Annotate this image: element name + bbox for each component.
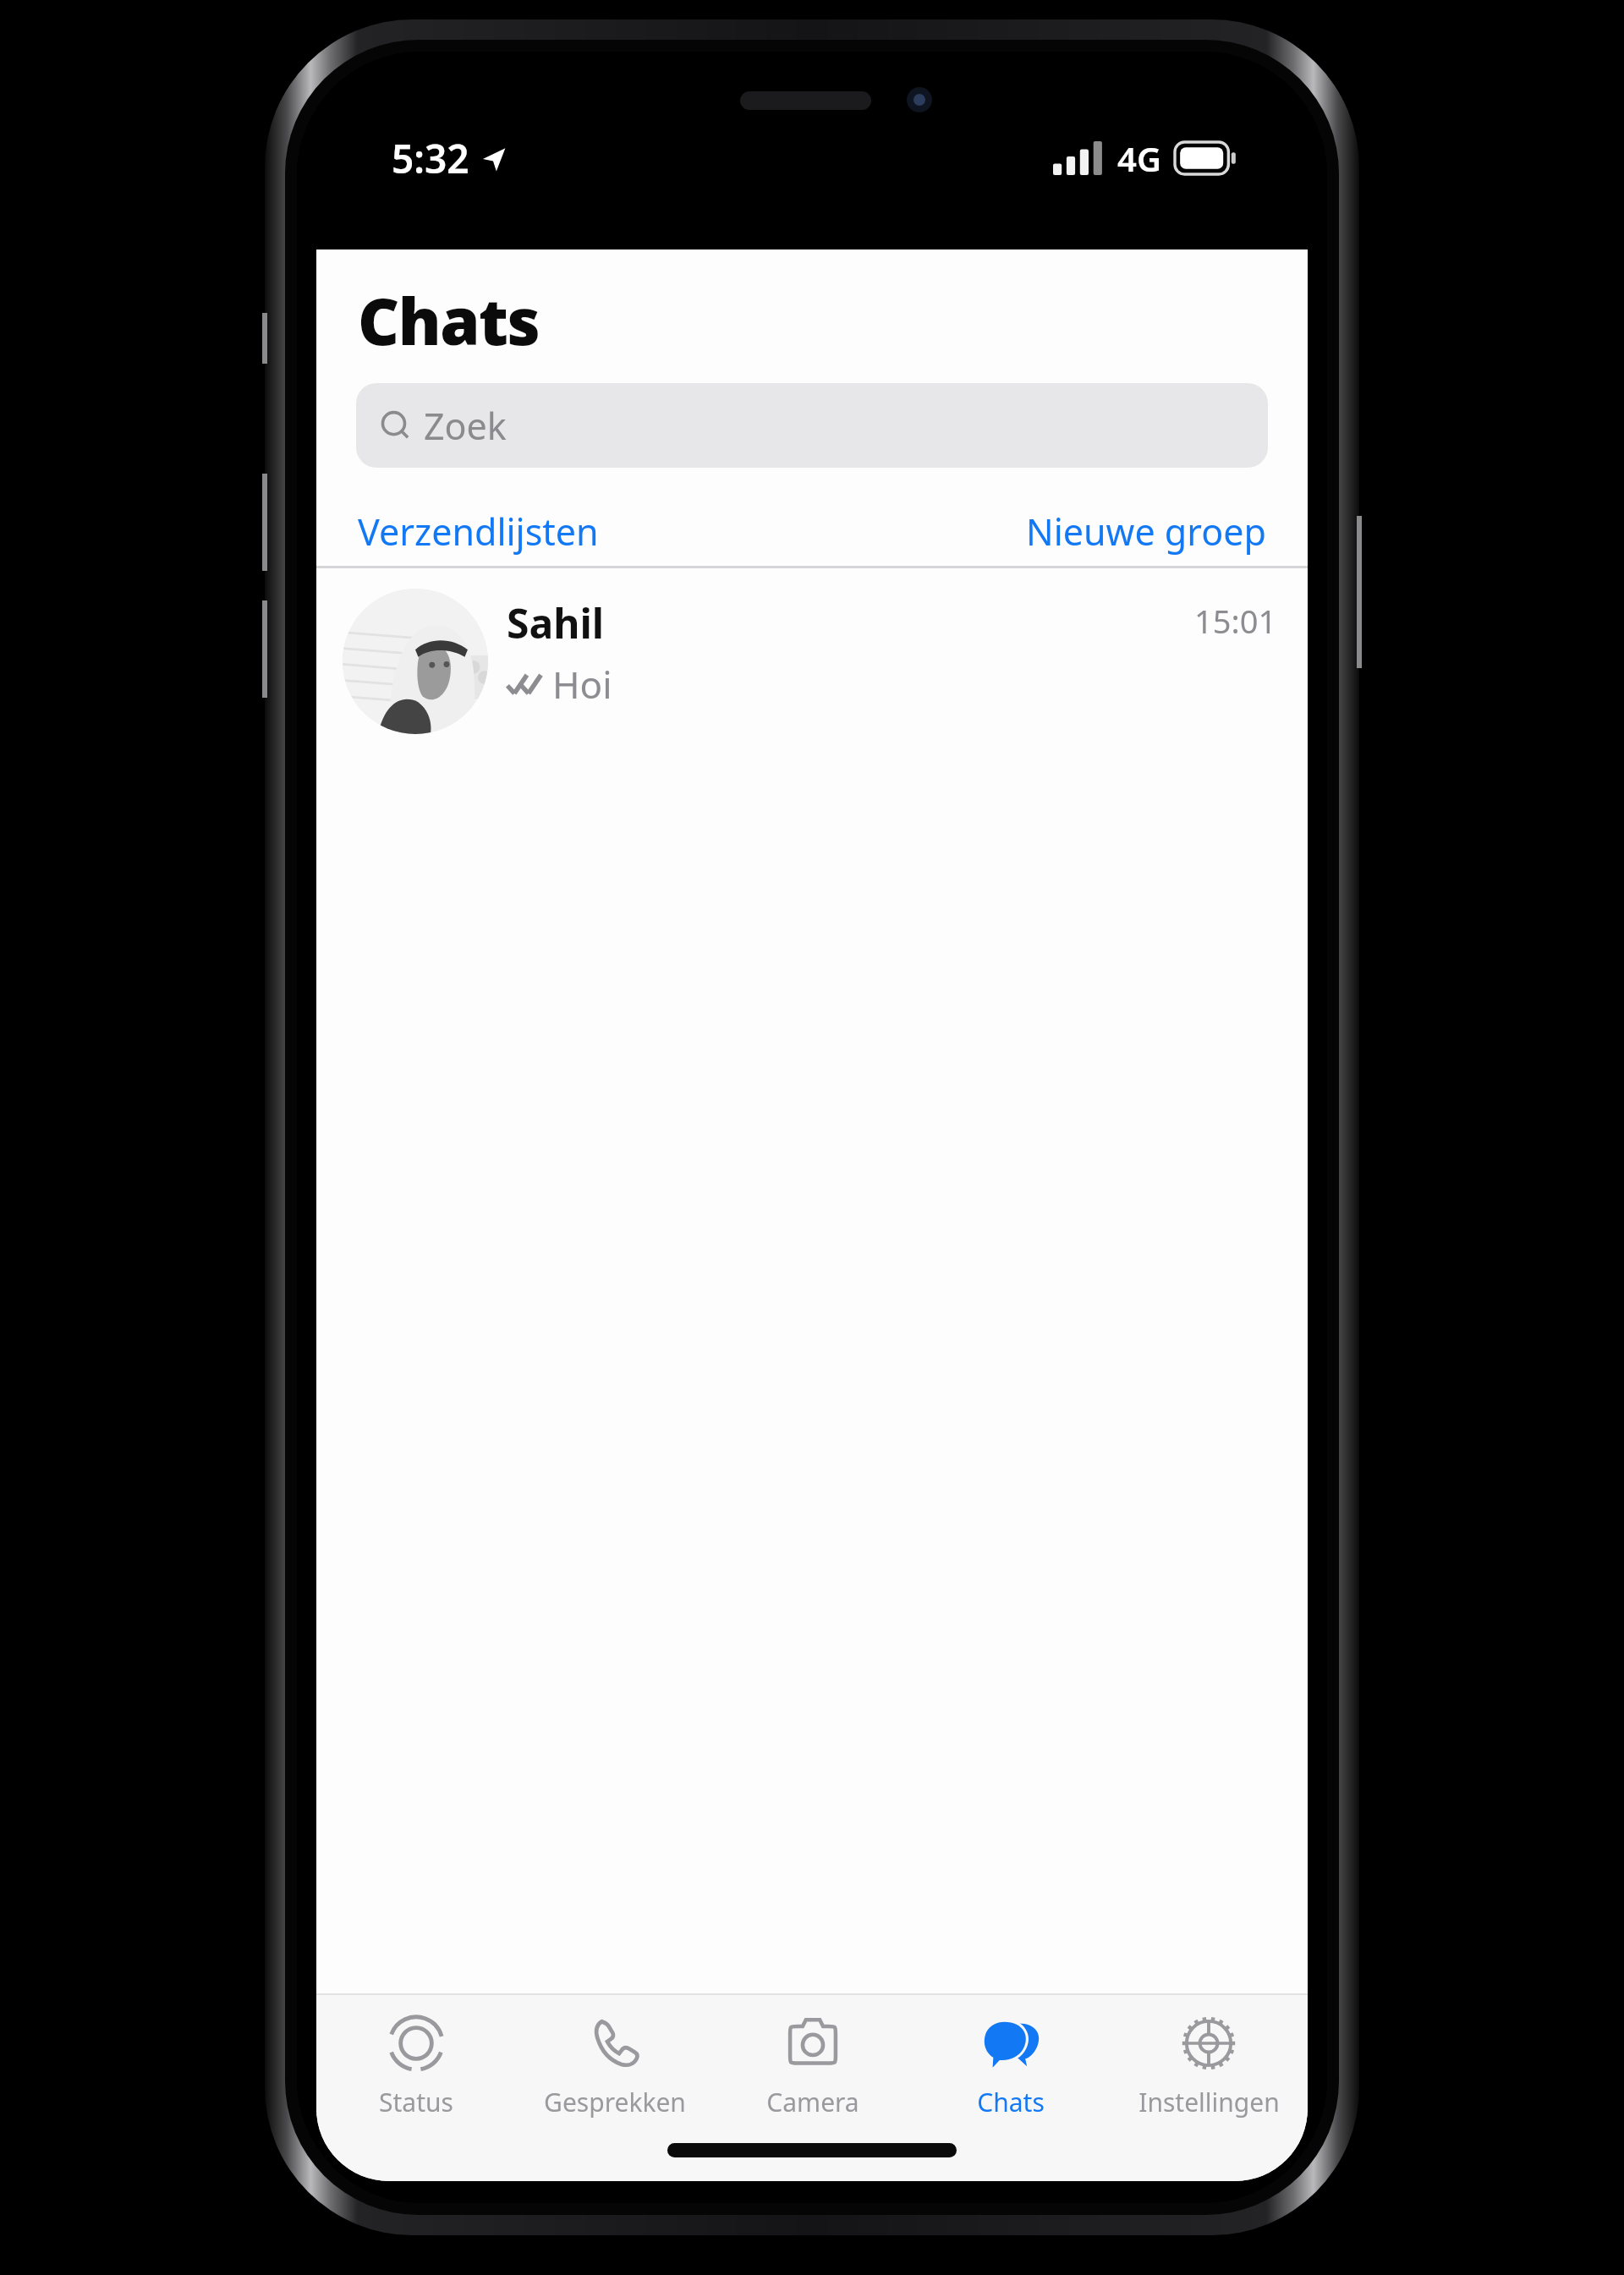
staticText: Sahil — [507, 595, 605, 650]
button[interactable]: Gesprekken — [515, 2005, 714, 2124]
staticText: Hoi — [552, 659, 612, 710]
button[interactable]: Sahil — [316, 568, 1308, 737]
staticText: Nieuwe groep — [1026, 507, 1266, 556]
staticText: Status — [379, 2085, 453, 2119]
staticText: 15:01 — [1194, 599, 1277, 643]
button[interactable]: Status — [316, 2005, 515, 2124]
staticText: 4G — [1117, 135, 1161, 181]
button[interactable]: Nieuwe groep — [1024, 500, 1268, 563]
button[interactable]: Instellingen — [1110, 2005, 1308, 2124]
button[interactable]: Zoek — [356, 383, 1268, 468]
staticText: Chats — [977, 2085, 1045, 2119]
staticText: 5:32 — [392, 132, 469, 185]
staticText: Zoek — [424, 401, 507, 451]
staticText: Gesprekken — [544, 2085, 686, 2119]
staticText: Verzendlijsten — [358, 507, 599, 556]
button[interactable]: Verzendlijsten — [356, 500, 601, 563]
staticText: Camera — [766, 2085, 859, 2119]
button[interactable]: Camera — [714, 2005, 912, 2124]
staticText: Instellingen — [1138, 2085, 1280, 2119]
staticText: Chats — [358, 277, 540, 365]
button[interactable]: Chats — [912, 2005, 1110, 2124]
